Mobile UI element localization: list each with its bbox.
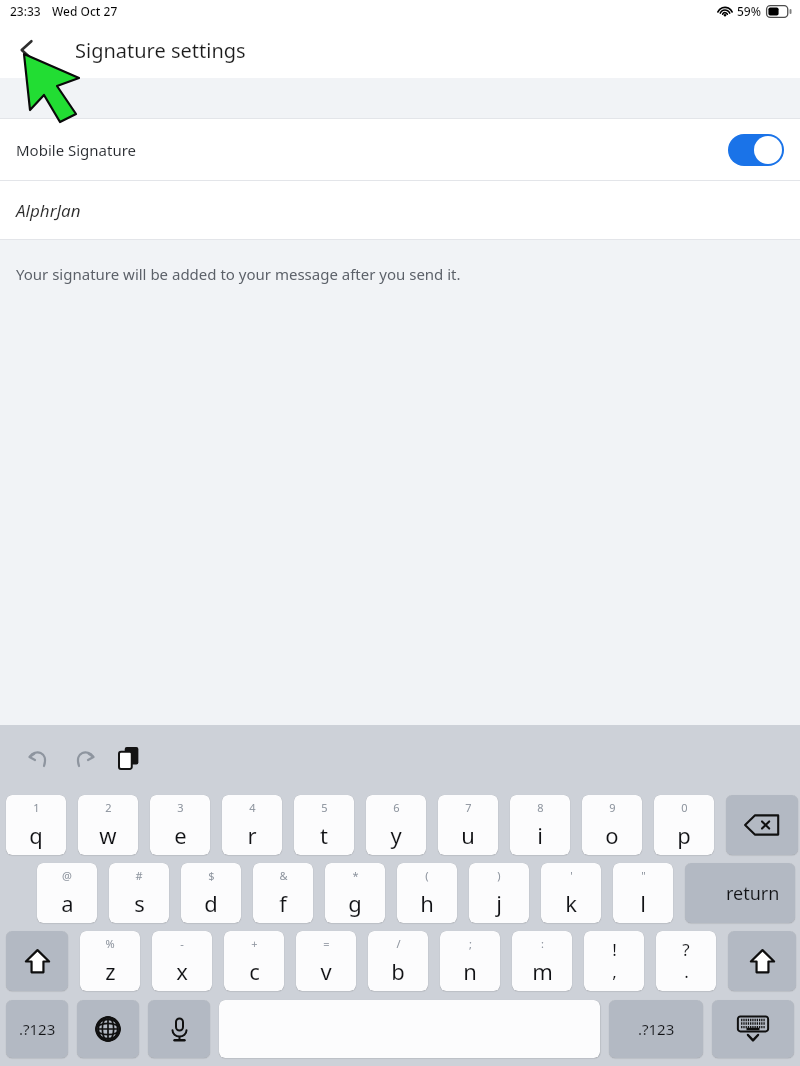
button[interactable]: Redo [64, 738, 104, 778]
button[interactable]: return [685, 863, 795, 923]
staticText: 5 [321, 800, 328, 815]
staticText: @ [62, 868, 72, 883]
button[interactable]: * [325, 863, 385, 923]
button[interactable]: @ [37, 863, 97, 923]
button[interactable]: Paste [110, 738, 150, 778]
button[interactable]: & [253, 863, 313, 923]
staticText: 7 [465, 800, 472, 815]
button[interactable]: ( [397, 863, 457, 923]
button[interactable]: ) [469, 863, 529, 923]
staticText: * [352, 868, 359, 883]
staticText: b [391, 956, 405, 986]
staticText: m [532, 956, 553, 986]
button[interactable]: Back [4, 27, 50, 73]
staticText: = [323, 936, 330, 951]
staticText: Signature settings [75, 37, 246, 64]
button[interactable]: Shift [728, 931, 796, 991]
staticText: . [684, 960, 689, 983]
staticText: z [105, 956, 116, 986]
staticText: - [180, 936, 184, 951]
button[interactable]: .?123 [6, 1000, 68, 1058]
button[interactable]: Change language [77, 1000, 139, 1058]
staticText: # [135, 868, 143, 883]
button[interactable]: 8 [510, 795, 570, 855]
staticText: % [105, 936, 115, 951]
button[interactable]: 1 [6, 795, 66, 855]
staticText: c [249, 956, 260, 986]
staticText: , [612, 960, 617, 983]
button[interactable]: Hide keyboard [712, 1000, 794, 1058]
button[interactable]: + [224, 931, 284, 991]
staticText: k [565, 888, 577, 918]
staticText: 8 [537, 800, 544, 815]
button[interactable]: ; [440, 931, 500, 991]
button[interactable]: Undo [18, 738, 58, 778]
staticText: .?123 [638, 1019, 675, 1039]
staticText: & [279, 868, 288, 883]
button[interactable]: 2 [78, 795, 138, 855]
button[interactable]: 3 [150, 795, 210, 855]
button[interactable]: .?123 [609, 1000, 703, 1058]
staticText: ) [497, 868, 501, 883]
staticText: Your signature will be added to your mes… [16, 264, 461, 284]
button[interactable]: Voice input [148, 1000, 210, 1058]
button[interactable]: 5 [294, 795, 354, 855]
staticText: q [29, 820, 43, 850]
button[interactable]: 7 [438, 795, 498, 855]
staticText: x [176, 956, 188, 986]
staticText: v [320, 956, 332, 986]
staticText: 9 [609, 800, 616, 815]
staticText: 1 [33, 800, 40, 815]
button[interactable]: - [152, 931, 212, 991]
staticText: j [496, 888, 502, 918]
button[interactable]: 6 [366, 795, 426, 855]
staticText: ; [469, 936, 472, 951]
button[interactable]: ! [584, 931, 644, 991]
staticText: t [320, 820, 328, 850]
staticText: 6 [393, 800, 400, 815]
button[interactable]: 0 [654, 795, 714, 855]
staticText: / [396, 936, 401, 951]
staticText: h [420, 888, 434, 918]
staticText: 4 [249, 800, 256, 815]
staticText: $ [208, 868, 215, 883]
staticText: Wed Oct 27 [52, 3, 118, 19]
staticText: Mobile Signature [16, 140, 137, 160]
button[interactable]: = [296, 931, 356, 991]
button[interactable]: 9 [582, 795, 642, 855]
staticText: n [463, 956, 477, 986]
staticText: ? [682, 938, 690, 961]
button[interactable]: / [368, 931, 428, 991]
staticText: ( [425, 868, 429, 883]
staticText: return [726, 881, 780, 906]
button[interactable]: 4 [222, 795, 282, 855]
staticText: y [390, 820, 402, 850]
staticText: ! [612, 938, 617, 961]
button[interactable]: $ [181, 863, 241, 923]
staticText: 0 [681, 800, 688, 815]
button[interactable]: Mobile Signature [0, 119, 800, 180]
staticText: 23:33 [10, 3, 41, 19]
button[interactable]: # [109, 863, 169, 923]
button[interactable]: % [80, 931, 140, 991]
button[interactable]: : [512, 931, 572, 991]
button[interactable]: Shift [6, 931, 68, 991]
button[interactable]: " [613, 863, 673, 923]
staticText: a [61, 888, 74, 918]
button[interactable]: ? [656, 931, 716, 991]
staticText: w [99, 820, 117, 850]
button[interactable]: AlphrJan [0, 181, 800, 239]
staticText: ' [570, 868, 573, 883]
staticText: g [348, 888, 362, 918]
button[interactable]: Backspace [726, 795, 798, 855]
staticText: o [605, 820, 619, 850]
button[interactable]: ' [541, 863, 601, 923]
staticText: s [134, 888, 145, 918]
staticText: r [247, 820, 257, 850]
staticText: 59% [737, 3, 761, 19]
staticText: " [641, 868, 646, 883]
staticText: f [279, 888, 287, 918]
staticText: e [174, 820, 187, 850]
staticText: + [251, 936, 258, 951]
